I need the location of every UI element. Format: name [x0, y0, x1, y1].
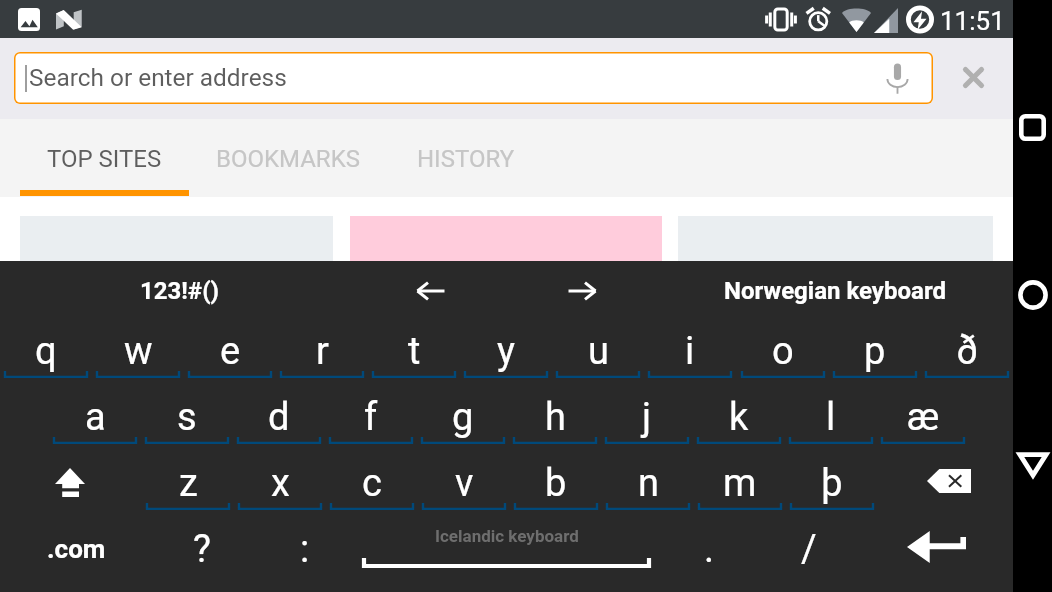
staticText: t [408, 329, 421, 374]
button[interactable]: Move cursor left [395, 261, 467, 321]
staticText: 11:51 [940, 6, 1005, 36]
button[interactable]: m [694, 453, 786, 519]
button[interactable]: y [460, 321, 552, 387]
button[interactable] [350, 216, 662, 262]
staticText: v [455, 461, 474, 506]
staticText: Search or enter address [29, 63, 287, 92]
button[interactable]: þ [786, 453, 878, 519]
button[interactable]: p [829, 321, 921, 387]
button[interactable]: o [737, 321, 829, 387]
button[interactable] [678, 216, 993, 262]
staticText: Norwegian keyboard [724, 277, 946, 305]
staticText: o [772, 329, 794, 374]
button[interactable]: b [510, 453, 602, 519]
button[interactable]: HISTORY [386, 119, 546, 197]
staticText: n [638, 461, 659, 506]
button[interactable]: Voice search [875, 56, 919, 100]
button[interactable]: Backspace [875, 453, 1013, 519]
staticText: f [364, 395, 378, 440]
button[interactable]: i [644, 321, 736, 387]
staticText: / [801, 527, 817, 572]
button[interactable]: x [234, 453, 326, 519]
staticText: e [220, 329, 241, 374]
staticText: r [316, 329, 329, 374]
button[interactable]: q [0, 321, 92, 387]
staticText: Icelandic keyboard [435, 526, 579, 546]
staticText: b [545, 461, 567, 506]
button[interactable]: Norwegian keyboard [690, 261, 980, 321]
staticText: p [864, 329, 886, 374]
staticText: w [124, 329, 153, 374]
button[interactable]: h [509, 387, 601, 453]
button[interactable]: ? [155, 519, 249, 585]
staticText: z [179, 461, 198, 506]
staticText: BOOKMARKS [216, 145, 360, 173]
staticText: m [723, 461, 757, 506]
staticText: c [362, 461, 382, 506]
staticText: i [685, 329, 695, 374]
button[interactable]: g [417, 387, 509, 453]
button[interactable]: n [602, 453, 694, 519]
staticText: l [826, 395, 836, 440]
staticText: ? [193, 527, 211, 572]
staticText: g [452, 395, 474, 440]
button[interactable]: Close [948, 52, 998, 102]
staticText: : [300, 527, 310, 572]
button[interactable] [20, 216, 333, 262]
button[interactable]: a [49, 387, 141, 453]
button[interactable]: Move cursor right [546, 261, 618, 321]
staticText: þ [821, 461, 843, 506]
staticText: TOP SITES [47, 145, 162, 173]
button[interactable]: / [765, 519, 853, 585]
button[interactable]: . [665, 519, 753, 585]
button[interactable]: w [92, 321, 184, 387]
button[interactable]: j [601, 387, 693, 453]
button[interactable]: v [418, 453, 510, 519]
button[interactable]: ð [921, 321, 1013, 387]
button[interactable]: Shift [0, 453, 138, 519]
staticText: ð [956, 329, 979, 374]
staticText: j [642, 395, 652, 440]
button[interactable]: æ [877, 387, 969, 453]
button[interactable]: s [141, 387, 233, 453]
button[interactable]: c [326, 453, 418, 519]
staticText: HISTORY [417, 145, 515, 173]
staticText: 123!#() [140, 277, 220, 305]
button[interactable]: Search or enter address [14, 52, 933, 104]
button[interactable]: z [142, 453, 234, 519]
button[interactable]: u [552, 321, 644, 387]
button[interactable]: Enter [875, 519, 1013, 585]
button[interactable]: TOP SITES [20, 119, 189, 197]
staticText: s [177, 395, 197, 440]
button[interactable]: BOOKMARKS [189, 119, 386, 197]
staticText: h [545, 395, 566, 440]
button[interactable]: e [184, 321, 276, 387]
button[interactable]: .com [20, 519, 132, 585]
staticText: x [271, 461, 290, 506]
button[interactable]: d [233, 387, 325, 453]
button[interactable]: r [276, 321, 368, 387]
button[interactable]: Recents [1013, 99, 1052, 155]
button[interactable]: t [368, 321, 460, 387]
button[interactable]: f [325, 387, 417, 453]
button[interactable]: Back [1013, 437, 1052, 492]
staticText: u [588, 329, 609, 374]
staticText: q [35, 329, 57, 374]
button[interactable]: l [785, 387, 877, 453]
staticText: y [497, 329, 515, 374]
staticText: . [704, 527, 715, 572]
staticText: d [268, 395, 290, 440]
staticText: k [729, 395, 749, 440]
button[interactable]: 123!#() [80, 261, 280, 321]
button[interactable]: : [258, 519, 352, 585]
button[interactable]: Space [355, 519, 658, 585]
button[interactable]: k [693, 387, 785, 453]
button[interactable]: Home [1013, 267, 1052, 323]
staticText: æ [907, 395, 940, 440]
staticText: .com [47, 534, 106, 564]
staticText: a [85, 395, 106, 440]
